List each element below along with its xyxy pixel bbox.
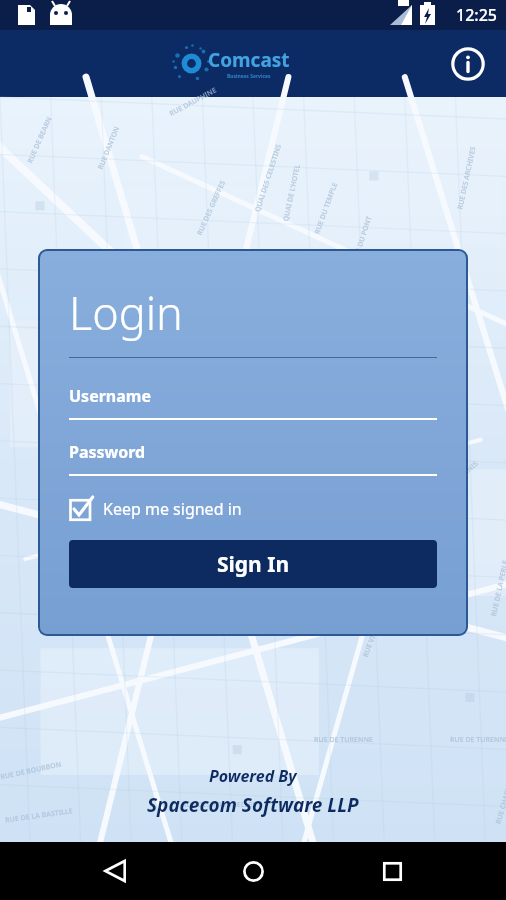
- staticText: RUE DE BEARN: [25, 115, 55, 165]
- staticText: RUE DE BOURBON: [0, 760, 62, 782]
- staticText: Login: [69, 282, 183, 343]
- staticText: RUE DANTON: [96, 125, 122, 171]
- staticText: Spacecom Software LLP: [147, 792, 359, 818]
- button[interactable]: Sign In: [69, 540, 437, 588]
- staticText: RUE DES TOURNELLES: [182, 800, 257, 810]
- staticText: QUAI DES CELESTINS: [253, 143, 284, 213]
- staticText: Business Services: [227, 73, 271, 80]
- staticText: Sign In: [217, 550, 290, 579]
- staticText: RUE DES GREFFES: [195, 179, 228, 237]
- staticText: RUE DAUPHINE: [168, 85, 219, 119]
- button[interactable]: Recent apps: [368, 847, 416, 895]
- staticText: Powered By: [209, 765, 297, 787]
- staticText: RUE VIEILLE DU TEMPLE: [361, 579, 398, 659]
- button[interactable]: Keep me signed in: [69, 496, 242, 521]
- button[interactable]: Home: [229, 847, 277, 895]
- button[interactable]: Username: [69, 385, 437, 420]
- staticText: 12:25: [456, 4, 497, 26]
- staticText: RUE CHARLOT: [494, 777, 506, 825]
- button[interactable]: Back: [91, 847, 139, 895]
- staticText: Username: [69, 385, 151, 407]
- staticText: Keep me signed in: [103, 498, 242, 520]
- staticText: Password: [69, 441, 146, 463]
- staticText: QUAI DE L'HOTEL: [281, 164, 303, 222]
- staticText: RUE DES ARCHIVES: [455, 146, 479, 210]
- staticText: Comcast: [208, 47, 290, 73]
- button[interactable]: Information: [447, 43, 489, 85]
- staticText: RUE DU TEMPLE: [312, 180, 341, 235]
- staticText: RUE DE LA BASTILLE: [5, 806, 73, 826]
- staticText: RUE DE QUINCAMPOIX: [347, 472, 419, 522]
- staticText: RUE DE TURENNE: [450, 735, 506, 745]
- staticText: RUE SAINT DENIS: [429, 459, 480, 505]
- staticText: RUE DE TURENNE: [314, 735, 373, 745]
- staticText: RUE DE LA PERLE: [489, 559, 506, 617]
- button[interactable]: Password: [69, 441, 437, 476]
- staticText: RUE DU PONT: [350, 215, 374, 263]
